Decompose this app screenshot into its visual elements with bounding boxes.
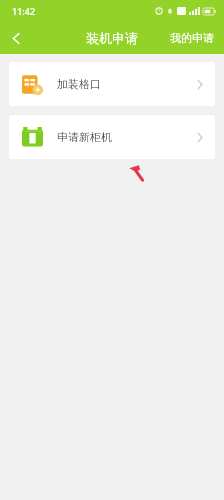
staticText: 加装格口 bbox=[57, 77, 101, 91]
button[interactable]: 申请新柜机 bbox=[9, 115, 215, 159]
button[interactable]: 我的申请 bbox=[160, 22, 224, 54]
staticText: 我的申请 bbox=[170, 31, 214, 45]
staticText: 11:42 bbox=[12, 5, 36, 17]
staticText: 装机申请 bbox=[86, 30, 138, 46]
button[interactable]: 加装格口 bbox=[9, 62, 215, 106]
staticText: 申请新柜机 bbox=[57, 130, 112, 144]
button[interactable]: Back bbox=[0, 22, 32, 54]
